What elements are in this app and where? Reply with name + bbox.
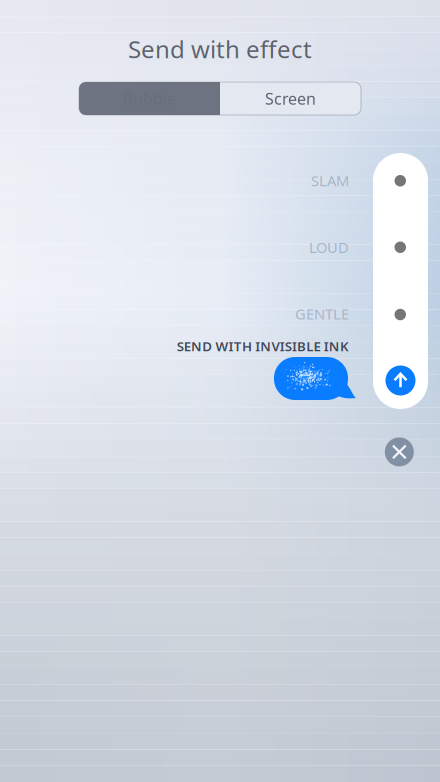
- staticText: Screen: [265, 88, 316, 109]
- button[interactable]: GENTLE: [0, 304, 349, 324]
- button[interactable]: SEND WITH INVISIBLE INK: [0, 336, 349, 356]
- staticText: GENTLE: [295, 304, 349, 324]
- staticText: Send with effect: [128, 33, 312, 65]
- button[interactable]: Bubble: [79, 82, 220, 115]
- button[interactable]: LOUD: [0, 237, 349, 257]
- button[interactable]: Screen: [220, 82, 361, 115]
- button[interactable]: Send: [385, 365, 415, 395]
- button[interactable]: SLAM: [0, 170, 349, 190]
- staticText: SEND WITH INVISIBLE INK: [177, 337, 349, 355]
- staticText: SLAM: [311, 171, 349, 190]
- button[interactable]: Close: [385, 437, 414, 466]
- staticText: LOUD: [309, 238, 349, 257]
